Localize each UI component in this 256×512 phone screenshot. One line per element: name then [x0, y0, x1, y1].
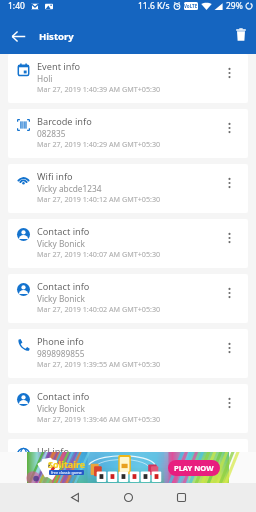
staticText: 9898989855: [37, 348, 85, 359]
staticText: Vicky Bonick: [37, 403, 86, 414]
button[interactable]: Wifi info: [8, 164, 248, 213]
button[interactable]: Delete history: [223, 16, 256, 52]
button[interactable]: Recent apps: [167, 483, 196, 512]
staticText: Phone info: [37, 335, 84, 348]
staticText: History: [39, 30, 74, 43]
button[interactable]: More options: [219, 228, 239, 248]
staticText: Mar 27, 2019 1:39:46 AM GMT+05:30: [37, 414, 161, 424]
button[interactable]: More options: [219, 63, 239, 83]
staticText: PLAY NOW: [174, 463, 214, 473]
button[interactable]: More options: [219, 338, 239, 358]
staticText: Mar 27, 2019 1:40:02 AM GMT+05:30: [37, 304, 161, 314]
staticText: Mar 27, 2019 1:40:12 AM GMT+05:30: [37, 194, 161, 204]
staticText: 082835: [37, 128, 66, 139]
button[interactable]: Back: [0, 18, 36, 54]
button[interactable]: Url info: [8, 439, 248, 488]
staticText: https://www.google.com: [37, 458, 134, 469]
button[interactable]: More options: [219, 173, 239, 193]
staticText: Barcode info: [37, 115, 92, 128]
staticText: Mar 27, 2019 1:39:55 AM GMT+05:30: [37, 359, 161, 369]
staticText: Vicky Bonick: [37, 238, 86, 249]
staticText: 1:40: [8, 0, 25, 12]
button[interactable]: More options: [219, 283, 239, 303]
staticText: Wifi info: [37, 170, 73, 183]
button[interactable]: Phone info: [8, 329, 248, 378]
staticText: Mar 27, 2019 1:40:29 AM GMT+05:30: [37, 139, 161, 149]
button[interactable]: More options: [219, 393, 239, 413]
staticText: Vicky Bonick: [37, 293, 86, 304]
staticText: 11.6 K/s: [138, 0, 170, 12]
staticText: 29%: [226, 0, 243, 12]
staticText: Contact info: [37, 390, 90, 403]
staticText: free classic game: [51, 470, 82, 475]
staticText: Url info: [37, 445, 70, 458]
staticText: Vicky abcde1234: [37, 183, 102, 194]
button[interactable]: More options: [219, 448, 239, 468]
staticText: Solitaire: [48, 458, 86, 470]
staticText: Holi: [37, 73, 53, 84]
staticText: Mar 27, 2019 1:40:39 AM GMT+05:30: [37, 84, 161, 94]
staticText: VoLTE: [184, 3, 198, 9]
staticText: Contact info: [37, 225, 90, 238]
button[interactable]: Contact info: [8, 274, 248, 323]
button[interactable]: Event info: [8, 54, 248, 103]
button[interactable]: Barcode info: [8, 109, 248, 158]
button[interactable]: Advertisement: Solitaire - Play Now: [27, 452, 229, 483]
button[interactable]: Contact info: [8, 219, 248, 268]
button[interactable]: Back: [61, 483, 90, 512]
button[interactable]: Contact info: [8, 384, 248, 433]
staticText: Mar 27, 2019 1:40:07 AM GMT+05:30: [37, 249, 161, 259]
staticText: Contact info: [37, 280, 90, 293]
staticText: Mar 27, 2019 1:39:30 AM GMT+05:30: [37, 469, 161, 479]
button[interactable]: More options: [219, 118, 239, 138]
button[interactable]: Home: [114, 483, 143, 512]
staticText: Event info: [37, 60, 81, 73]
